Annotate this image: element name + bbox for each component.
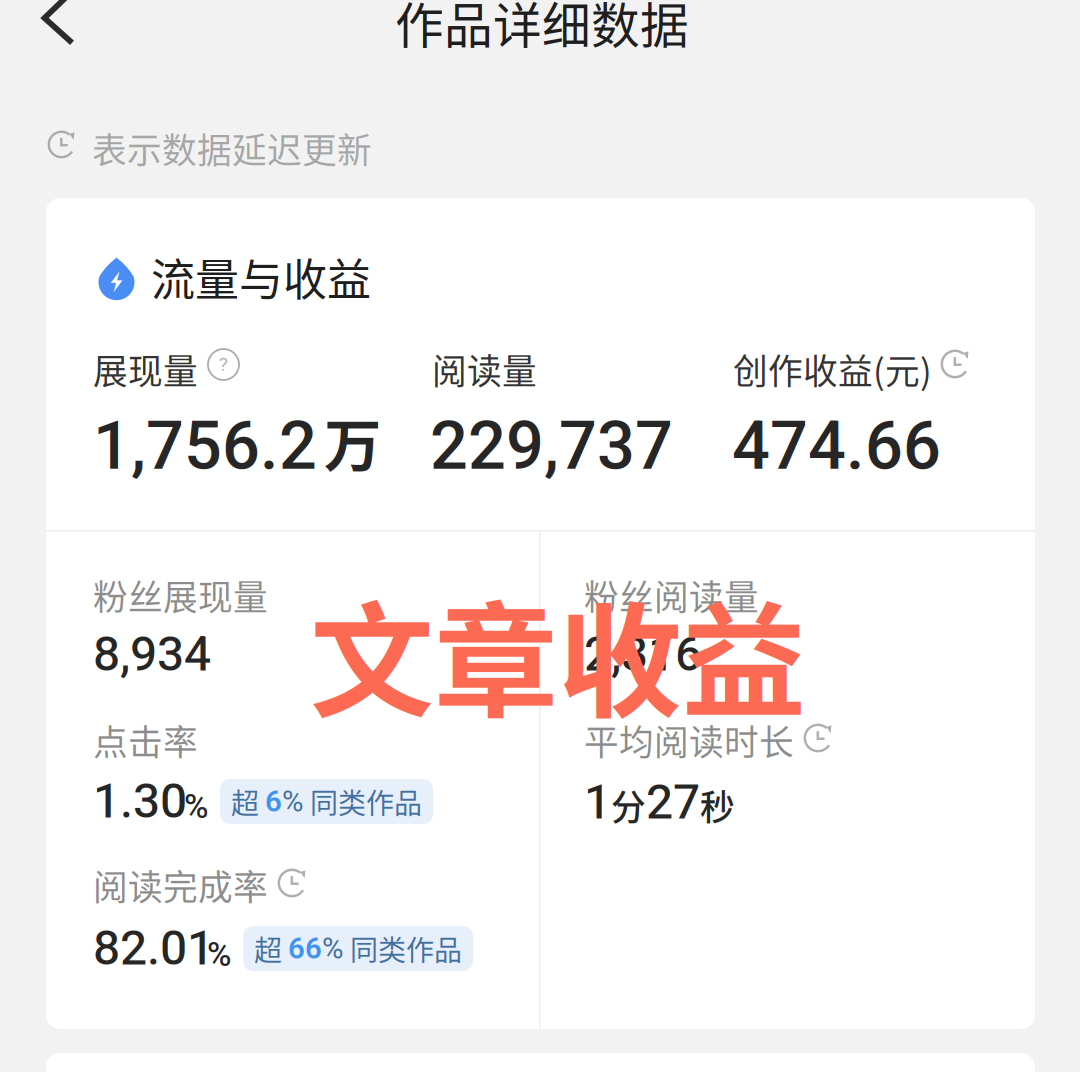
staticText: % <box>322 931 344 966</box>
staticText: % <box>184 787 209 826</box>
staticText: 1 <box>584 774 611 830</box>
staticText: 1,756.2 <box>93 407 317 485</box>
staticText: 同类作品 <box>344 928 462 969</box>
staticText: 文章收益 <box>310 563 806 743</box>
button[interactable]: Back <box>0 0 110 56</box>
staticText: 作品详细数据 <box>395 0 689 57</box>
staticText: 创作收益(元) <box>733 344 932 394</box>
staticText: % <box>282 784 304 819</box>
staticText: 1.30 <box>93 773 187 829</box>
staticText: 27 <box>646 774 700 830</box>
staticText: 点击率 <box>93 715 198 765</box>
staticText: 平均阅读时长 <box>584 715 794 765</box>
staticText: 超 <box>254 928 288 969</box>
staticText: 阅读量 <box>432 344 537 394</box>
staticText: 万 <box>324 400 381 483</box>
staticText: 粉丝展现量 <box>93 570 268 620</box>
staticText: 2,316 <box>584 626 702 682</box>
staticText: 66 <box>288 931 322 966</box>
staticText: 同类作品 <box>304 781 422 822</box>
staticText: 阅读完成率 <box>93 860 268 910</box>
staticText: 82.01 <box>93 920 214 976</box>
staticText: 8,934 <box>93 626 211 682</box>
staticText: 229,737 <box>430 407 673 485</box>
staticText: 流量与收益 <box>151 245 371 309</box>
staticText: 超 <box>231 781 265 822</box>
staticText: 6 <box>265 784 282 819</box>
staticText: 展现量 <box>93 344 198 394</box>
staticText: ? <box>219 354 228 375</box>
staticText: 表示数据延迟更新 <box>92 123 372 173</box>
staticText: 474.66 <box>732 407 941 485</box>
staticText: 粉丝阅读量 <box>584 570 759 620</box>
staticText: 秒 <box>700 780 735 830</box>
staticText: % <box>207 935 232 974</box>
staticText: 分 <box>611 780 646 830</box>
